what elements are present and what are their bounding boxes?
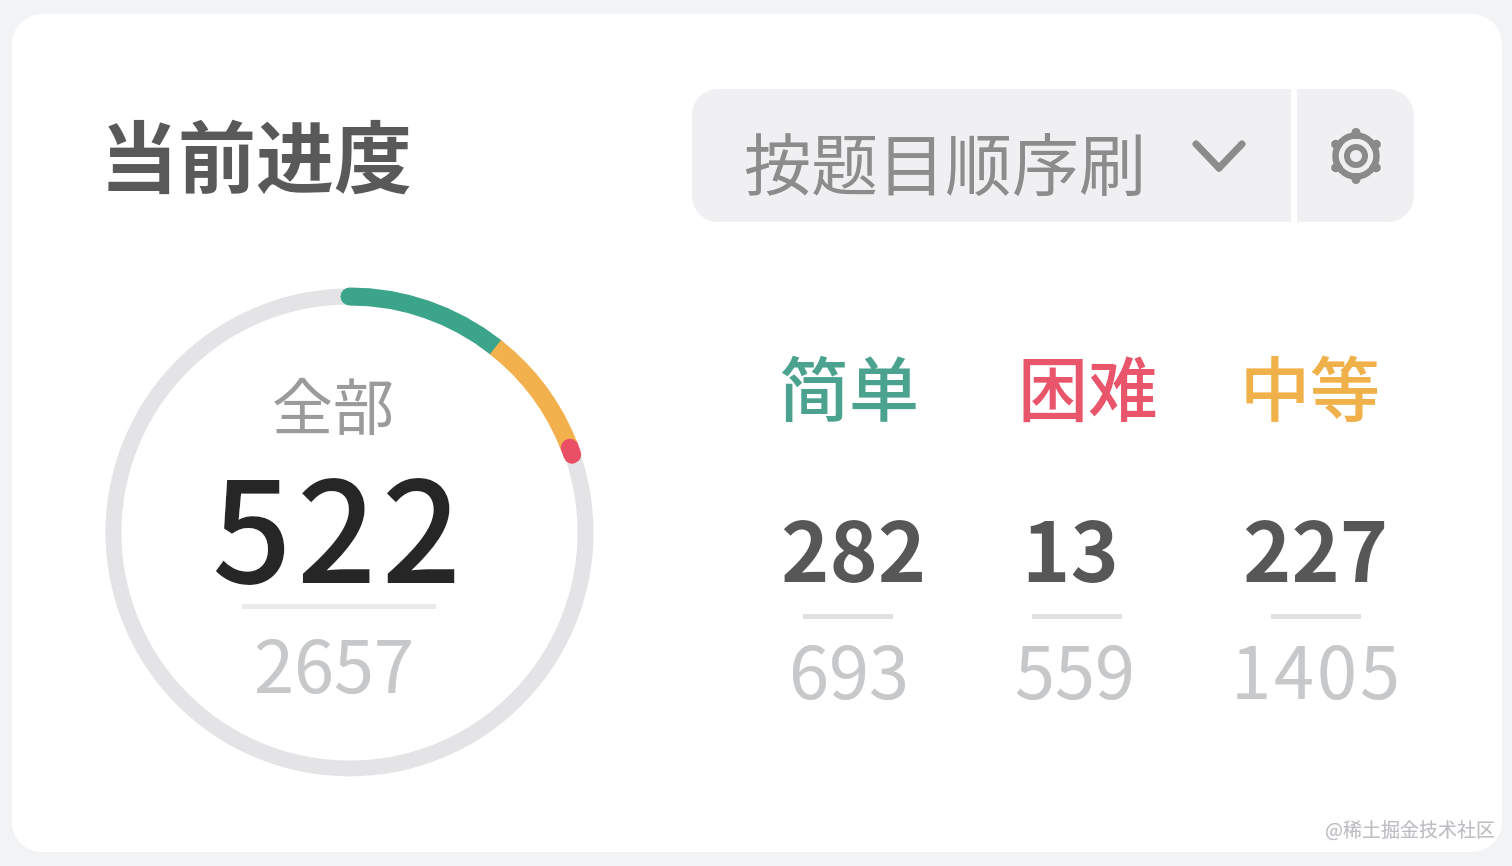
- staticText: 困难: [1018, 335, 1158, 436]
- staticText: 当前进度: [100, 97, 413, 210]
- button[interactable]: [1297, 89, 1414, 222]
- staticText: 中等: [1240, 335, 1380, 436]
- staticText: 13: [1022, 487, 1119, 606]
- staticText: 简单: [779, 335, 919, 436]
- staticText: 559: [1015, 615, 1135, 719]
- staticText: 693: [789, 615, 909, 719]
- staticText: 227: [1243, 487, 1389, 606]
- staticText: 522: [212, 421, 467, 624]
- button[interactable]: 按题目顺序刷: [692, 89, 1291, 222]
- staticText: 全部: [272, 359, 395, 447]
- staticText: @稀土掘金技术社区: [1325, 815, 1495, 843]
- staticText: 282: [781, 487, 927, 606]
- staticText: 按题目顺序刷: [744, 112, 1146, 209]
- staticText: 2657: [254, 609, 414, 713]
- staticText: 1405: [1231, 615, 1403, 719]
